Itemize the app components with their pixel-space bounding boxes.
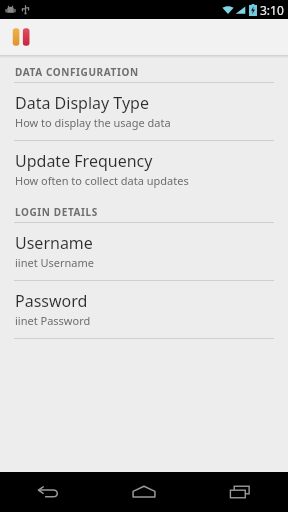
staticText: LOGIN DETAILS (15, 205, 98, 219)
button[interactable]: Recent apps (192, 472, 288, 512)
staticText: 3:10 (260, 2, 284, 18)
staticText: How often to collect data updates (15, 173, 189, 188)
button[interactable]: Home (96, 472, 192, 512)
button[interactable]: Update Frequency (0, 141, 288, 198)
staticText: Data Display Type (15, 92, 149, 114)
button[interactable]: Password (0, 281, 288, 338)
staticText: How to display the usage data (15, 115, 171, 130)
staticText: Update Frequency (15, 150, 153, 172)
staticText: DATA CONFIGURATION (15, 65, 139, 79)
staticText: iinet Password (15, 313, 91, 328)
staticText: Username (15, 232, 93, 254)
staticText: iinet Username (15, 255, 95, 270)
staticText: Password (15, 290, 88, 312)
button[interactable]: App icon (11, 26, 33, 48)
button[interactable]: Back (0, 472, 96, 512)
button[interactable]: Username (0, 223, 288, 280)
button[interactable]: Data Display Type (0, 83, 288, 140)
